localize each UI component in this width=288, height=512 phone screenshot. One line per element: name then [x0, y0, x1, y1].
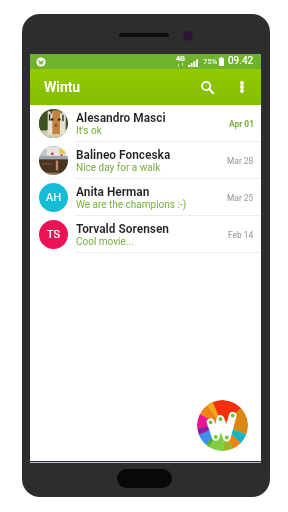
staticText: Wintu	[44, 79, 81, 95]
button[interactable]: More options	[231, 69, 253, 105]
button[interactable]: TS	[30, 216, 261, 253]
button[interactable]: New chat	[197, 400, 248, 451]
button[interactable]: Alesandro Masci	[30, 105, 261, 142]
staticText: 4G	[176, 55, 185, 63]
staticText: Alesandro Masci	[76, 111, 166, 125]
staticText: AH	[46, 191, 62, 204]
staticText: We are the champions :-)	[76, 199, 187, 211]
staticText: It's ok	[76, 125, 102, 137]
staticText: Cool movie...	[76, 236, 134, 248]
button[interactable]: AH	[30, 179, 261, 216]
staticText: Nice day for a walk	[76, 162, 161, 174]
staticText: TS	[47, 228, 61, 241]
staticText: Mar 25	[227, 193, 254, 203]
staticText: Balineo Fonceska	[76, 148, 171, 162]
staticText: 09.42	[228, 55, 254, 67]
staticText: Mar 28	[227, 156, 254, 166]
staticText: 75%	[203, 57, 217, 66]
staticText: Feb 14	[228, 230, 254, 240]
staticText: Apr 01	[229, 119, 254, 129]
button[interactable]: Search	[193, 69, 221, 105]
staticText: Anita Herman	[76, 185, 150, 199]
staticText: Torvald Sorensen	[76, 222, 169, 236]
button[interactable]: Balineo Fonceska	[30, 142, 261, 179]
